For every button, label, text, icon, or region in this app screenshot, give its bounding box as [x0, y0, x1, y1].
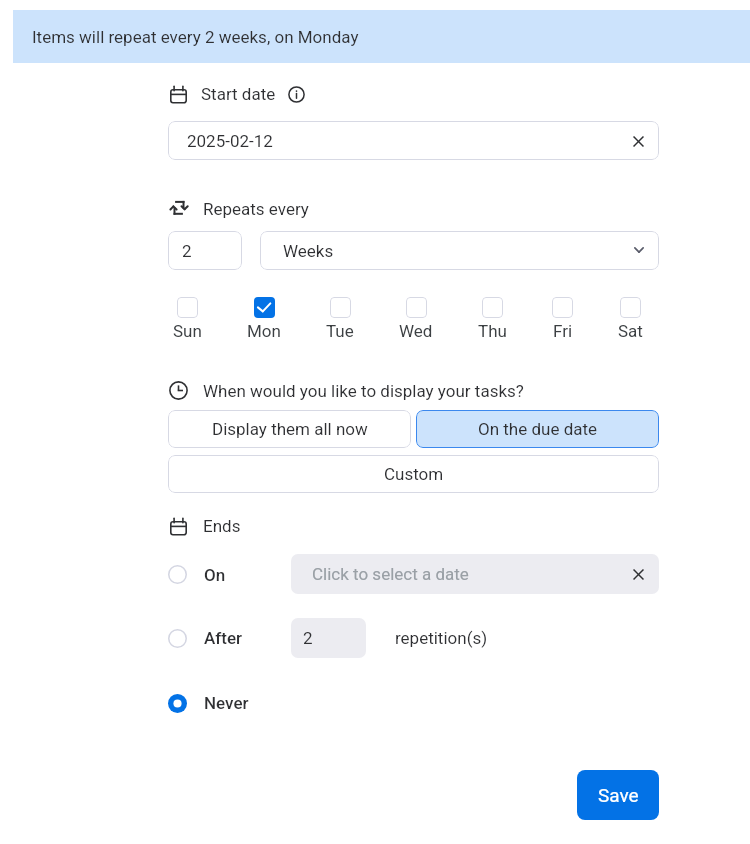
button[interactable]: Save [577, 770, 659, 820]
staticText: Tue [326, 321, 354, 341]
staticText: Display them all now [212, 419, 368, 439]
button[interactable]: Mon [247, 297, 281, 341]
staticText: Weeks [283, 241, 334, 261]
staticText: When would you like to display your task… [203, 381, 524, 401]
button[interactable]: Sat [618, 297, 643, 341]
staticText: Never [204, 693, 249, 713]
button[interactable]: After [168, 618, 243, 658]
button[interactable]: Clear end date [626, 562, 650, 586]
staticText: After [204, 628, 243, 648]
staticText: Custom [384, 464, 444, 484]
button[interactable]: 2 [168, 231, 242, 270]
staticText: Wed [399, 321, 433, 341]
staticText: Sat [618, 321, 643, 341]
button[interactable]: Clear start date [626, 129, 650, 153]
staticText: Save [598, 784, 639, 806]
button[interactable]: Wed [399, 297, 433, 341]
button[interactable]: Custom [168, 455, 659, 493]
staticText: Sun [173, 321, 202, 341]
button[interactable]: Display them all now [168, 410, 411, 448]
button[interactable]: Click to select a date [291, 554, 659, 594]
staticText: Repeats every [203, 199, 309, 219]
staticText: On [204, 565, 226, 585]
staticText: Fri [553, 321, 573, 341]
button[interactable]: Sun [173, 297, 202, 341]
staticText: 2 [303, 628, 313, 648]
staticText: Start date [201, 84, 276, 104]
staticText: 2025-02-12 [187, 131, 273, 151]
staticText: On the due date [478, 419, 598, 439]
button[interactable]: Fri [552, 297, 573, 341]
button[interactable]: Tue [326, 297, 354, 341]
staticText: Items will repeat every 2 weeks, on Mond… [32, 27, 359, 47]
button[interactable]: On [168, 554, 226, 595]
staticText: Click to select a date [312, 564, 469, 584]
button[interactable]: 2025-02-12 [168, 121, 659, 160]
staticText: Thu [478, 321, 507, 341]
staticText: repetition(s) [395, 628, 488, 648]
button[interactable]: Never [168, 690, 249, 716]
staticText: Mon [247, 321, 281, 341]
button[interactable]: Thu [478, 297, 507, 341]
button[interactable]: Weeks [260, 231, 659, 270]
staticText: 2 [182, 241, 192, 261]
button[interactable]: 2 [291, 618, 366, 658]
staticText: Ends [203, 516, 241, 536]
button[interactable]: On the due date [416, 410, 659, 448]
